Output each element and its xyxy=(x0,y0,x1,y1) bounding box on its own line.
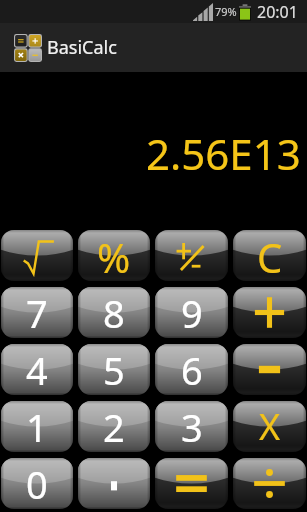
button[interactable]: Divide xyxy=(233,458,306,509)
staticText: 2 xyxy=(103,401,125,452)
button[interactable]: 0 xyxy=(1,458,73,509)
button[interactable]: 2 xyxy=(78,401,150,452)
button[interactable]: 7 xyxy=(1,287,73,338)
button[interactable]: 6 xyxy=(155,344,228,395)
staticText: 2.56E13 xyxy=(146,125,301,182)
staticText: 7 xyxy=(26,287,48,338)
staticText: X xyxy=(259,402,281,451)
button[interactable]: Plus xyxy=(233,287,306,338)
staticText: % xyxy=(97,230,131,281)
button[interactable]: Square root xyxy=(1,230,73,281)
button[interactable]: Minus xyxy=(233,344,306,395)
button[interactable]: Decimal point xyxy=(78,458,150,509)
button[interactable]: 9 xyxy=(155,287,228,338)
button[interactable]: Equals xyxy=(155,458,228,509)
staticText: 79% xyxy=(215,4,237,19)
staticText: 0 xyxy=(26,458,48,509)
staticText: C xyxy=(257,230,283,281)
button[interactable]: 3 xyxy=(155,401,228,452)
button[interactable]: Multiply xyxy=(233,401,306,452)
staticText: 4 xyxy=(26,344,48,395)
staticText: 6 xyxy=(181,344,203,395)
button[interactable]: C xyxy=(233,230,306,281)
button[interactable]: 1 xyxy=(1,401,73,452)
staticText: 3 xyxy=(181,401,203,452)
staticText: 8 xyxy=(103,287,125,338)
staticText: BasiCalc xyxy=(47,35,117,60)
staticText: 1 xyxy=(26,401,48,452)
button[interactable]: 8 xyxy=(78,287,150,338)
staticText: 5 xyxy=(103,344,125,395)
button[interactable]: % xyxy=(78,230,150,281)
button[interactable]: 4 xyxy=(1,344,73,395)
staticText: 9 xyxy=(181,287,203,338)
button[interactable]: 5 xyxy=(78,344,150,395)
button[interactable]: Plus minus xyxy=(155,230,228,281)
staticText: 20:01 xyxy=(257,1,298,23)
